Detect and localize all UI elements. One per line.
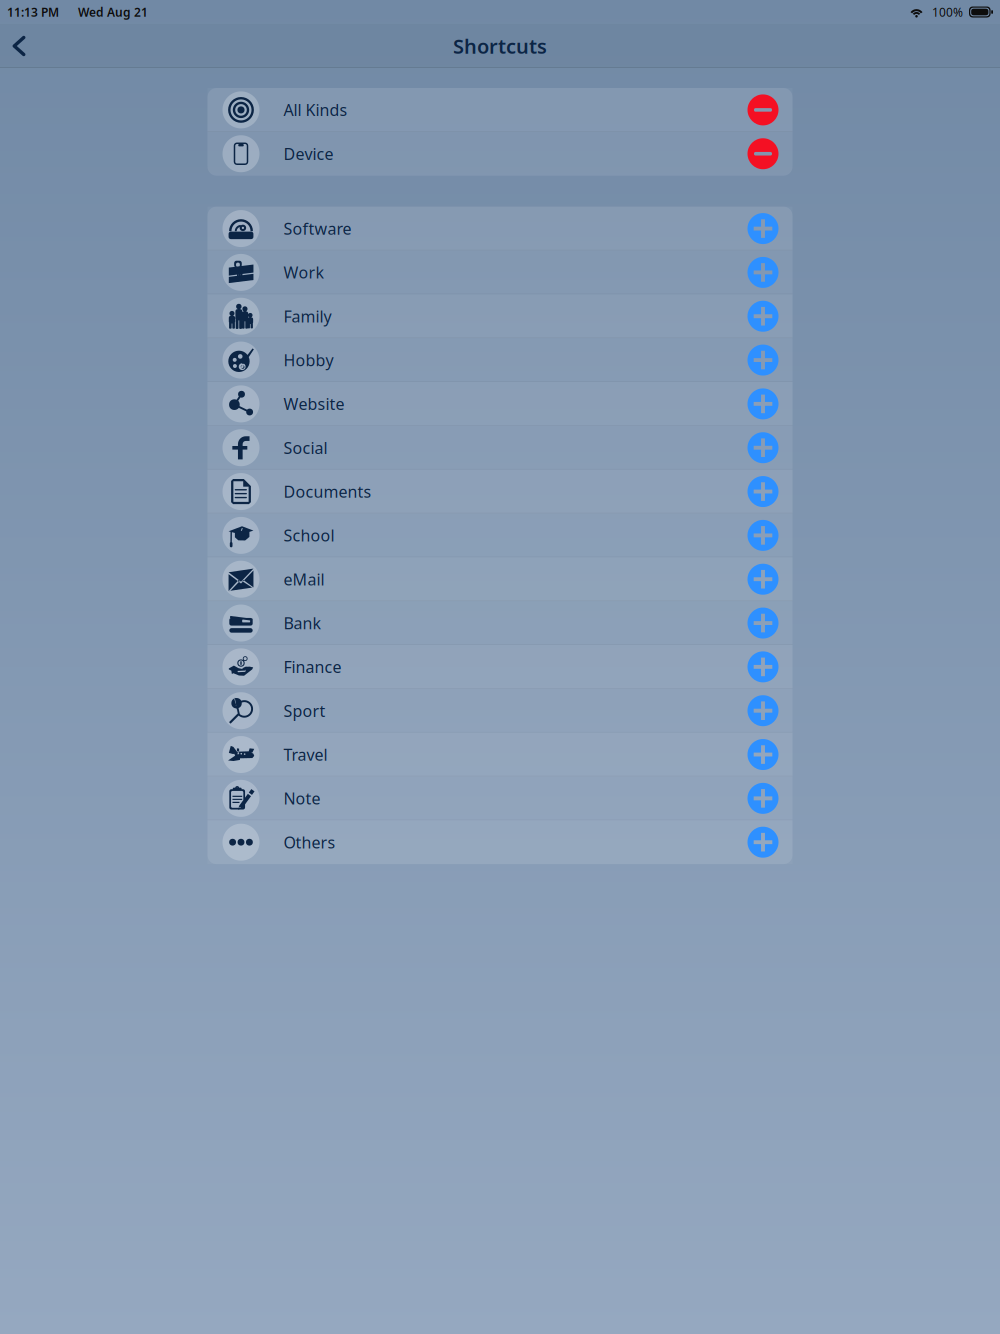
button[interactable]: Website (207, 382, 792, 426)
staticText: Wed Aug 21 (78, 4, 148, 20)
button[interactable]: eMail (207, 557, 792, 601)
staticText: Finance (283, 656, 341, 677)
staticText: eMail (283, 569, 324, 590)
button[interactable]: School (207, 513, 792, 557)
button[interactable]: Note (207, 776, 792, 820)
staticText: School (283, 525, 334, 546)
staticText: All Kinds (283, 99, 347, 120)
staticText: 100% (932, 4, 963, 20)
staticText: Work (283, 262, 324, 283)
button[interactable]: Travel (207, 733, 792, 776)
staticText: Website (283, 393, 344, 414)
button[interactable]: Documents (207, 470, 792, 513)
button[interactable]: Software (207, 207, 792, 250)
staticText: Software (283, 218, 351, 239)
button[interactable]: Hobby (207, 338, 792, 382)
button[interactable]: Social (207, 426, 792, 470)
button[interactable]: Back (0, 24, 38, 68)
button[interactable]: Bank (207, 601, 792, 645)
button[interactable]: Device (207, 132, 792, 176)
button[interactable]: Family (207, 294, 792, 338)
button[interactable]: Sport (207, 689, 792, 733)
staticText: Note (283, 788, 320, 809)
button[interactable]: Others (207, 820, 792, 864)
button[interactable]: All Kinds (207, 88, 792, 132)
staticText: Documents (283, 481, 371, 502)
staticText: Device (283, 143, 333, 164)
staticText: Family (283, 306, 331, 327)
staticText: Social (283, 437, 327, 458)
staticText: Shortcuts (453, 33, 547, 59)
button[interactable]: Finance (207, 645, 792, 689)
staticText: 11:13 PM (7, 4, 59, 20)
button[interactable]: Work (207, 250, 792, 294)
staticText: Hobby (283, 349, 333, 371)
staticText: Bank (283, 612, 321, 634)
staticText: Travel (283, 744, 327, 765)
staticText: Sport (283, 700, 325, 721)
staticText: Others (283, 832, 335, 853)
